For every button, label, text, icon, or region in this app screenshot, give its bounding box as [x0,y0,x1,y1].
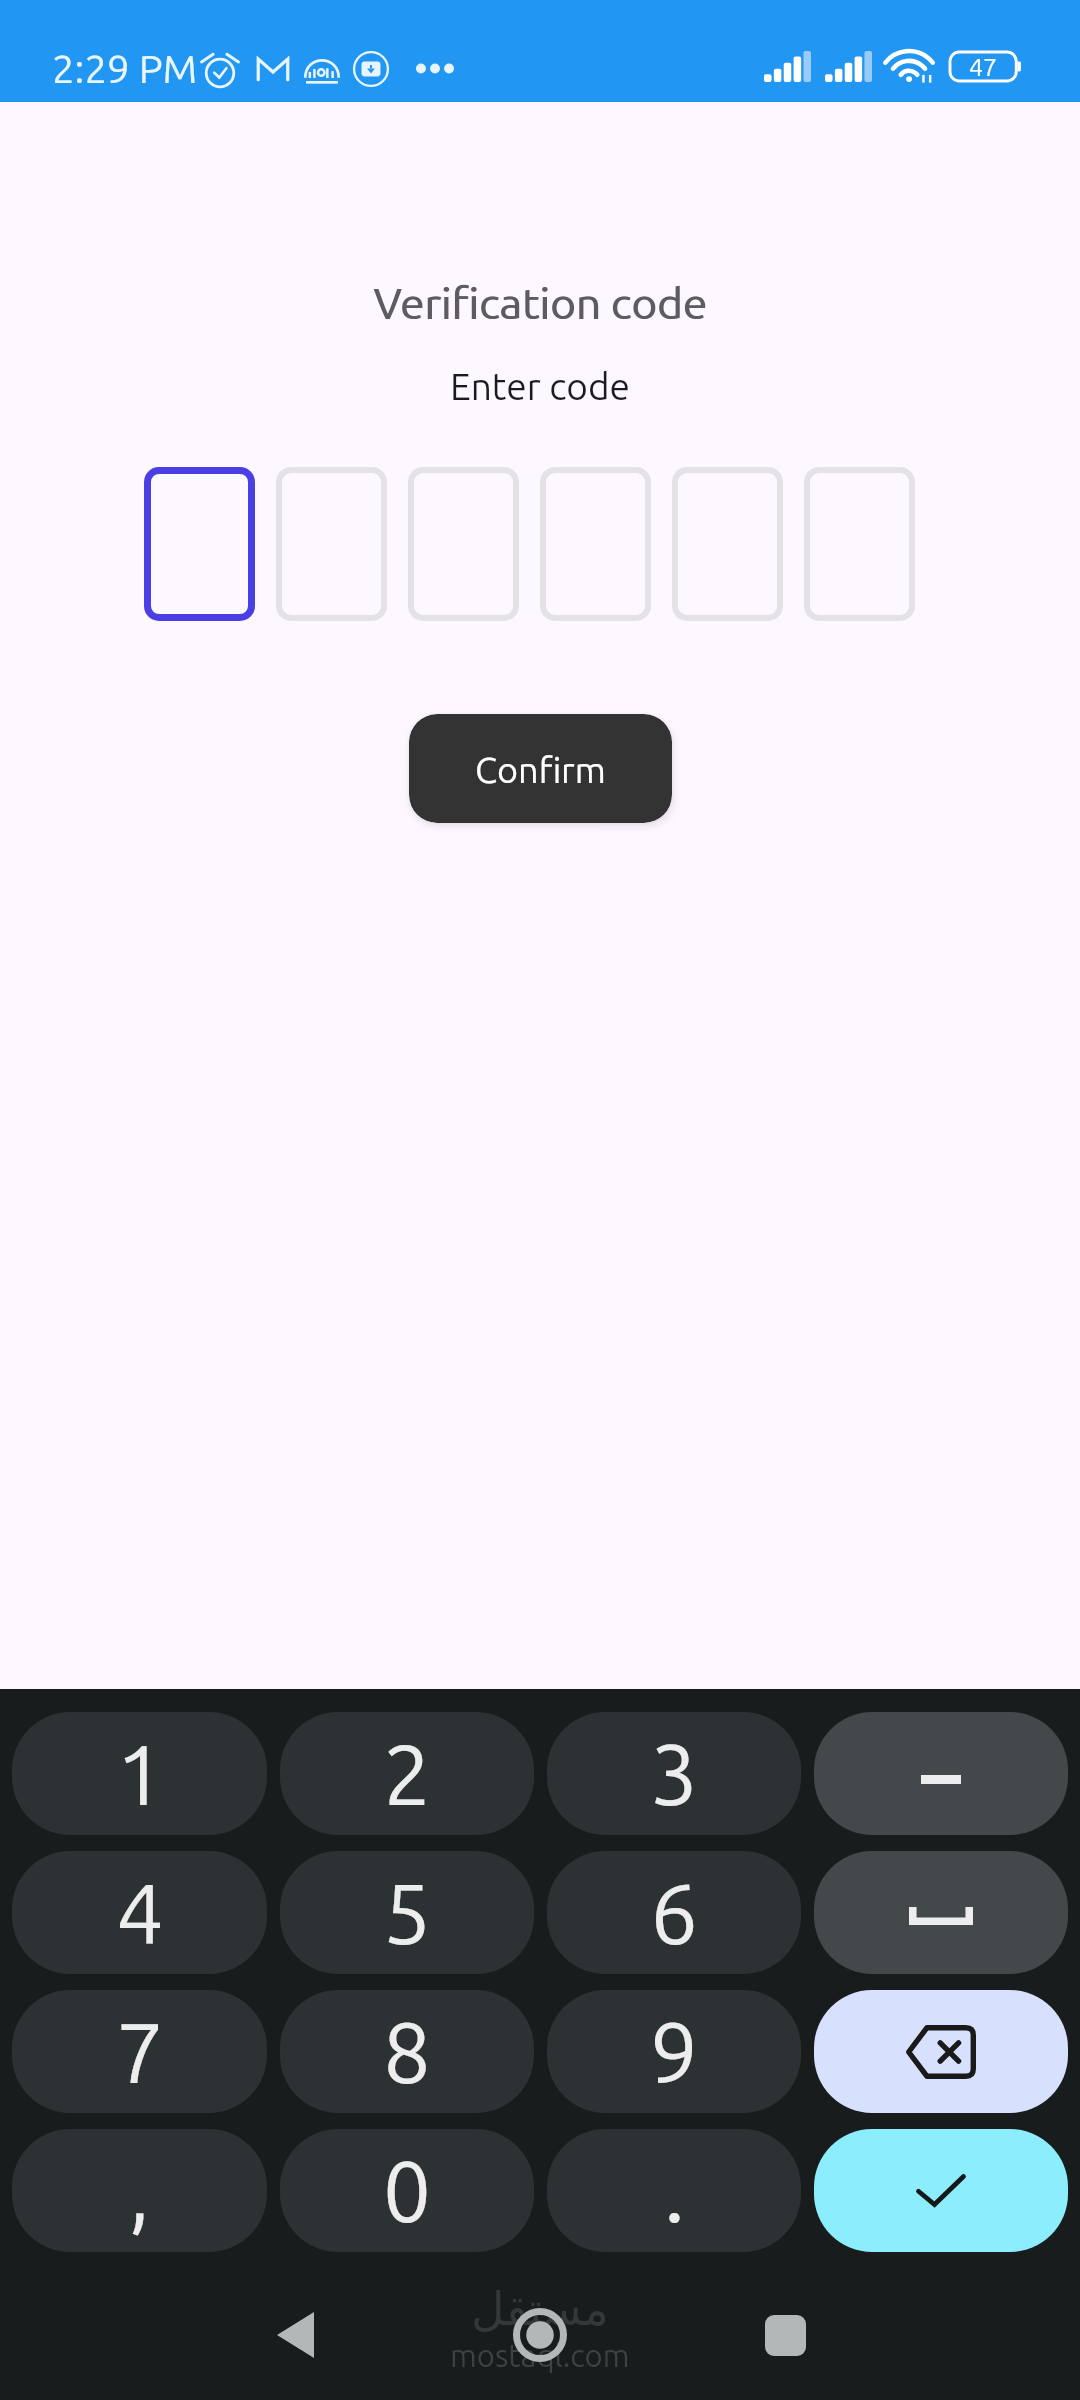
button[interactable]: . [547,2129,801,2252]
staticText: Verification code [1,278,1080,327]
staticText: 47 [969,53,998,81]
button[interactable]: 0 [280,2129,534,2252]
button[interactable]: Recents [735,2285,835,2385]
button[interactable]: Backspace [814,1990,1068,2113]
staticText: 7 [116,2004,164,2099]
staticText: 8 [383,2004,431,2099]
button[interactable]: Confirm [409,714,672,823]
staticText: , [129,2143,150,2238]
button[interactable]: 1 [12,1712,267,1835]
button[interactable] [672,467,783,621]
staticText: Enter code [0,366,1080,407]
button[interactable]: 9 [547,1990,801,2113]
staticText: 2 [383,1726,431,1821]
button[interactable] [276,467,387,621]
staticText: Verification code [0,278,1080,327]
staticText: 2:29 PM [52,46,198,91]
button[interactable]: 8 [280,1990,534,2113]
button[interactable]: Home [490,2285,590,2385]
staticText: 1 [116,1726,164,1821]
button[interactable]: Space [814,1851,1068,1974]
button[interactable] [408,467,519,621]
staticText: mostaql.com [450,2338,630,2373]
button[interactable] [540,467,651,621]
staticText: 9 [650,2004,698,2099]
staticText: 6 [650,1865,698,1960]
staticText: 3 [650,1726,698,1821]
staticText: Confirm [475,749,606,789]
button[interactable] [144,467,255,621]
button[interactable] [804,467,915,621]
button[interactable]: 4 [12,1851,267,1974]
button[interactable]: Enter [814,2129,1068,2252]
staticText: 0 [383,2143,431,2238]
button[interactable]: Back [245,2285,345,2385]
button[interactable]: 3 [547,1712,801,1835]
button[interactable]: , [12,2129,267,2252]
staticText: 4 [116,1865,164,1960]
button[interactable]: 7 [12,1990,267,2113]
staticText: . [664,2143,685,2238]
button[interactable]: 5 [280,1851,534,1974]
button[interactable]: Minus [814,1712,1068,1835]
button[interactable]: 6 [547,1851,801,1974]
staticText: 5 [383,1865,431,1960]
staticText: مستقل [471,2282,609,2336]
button[interactable]: 2 [280,1712,534,1835]
